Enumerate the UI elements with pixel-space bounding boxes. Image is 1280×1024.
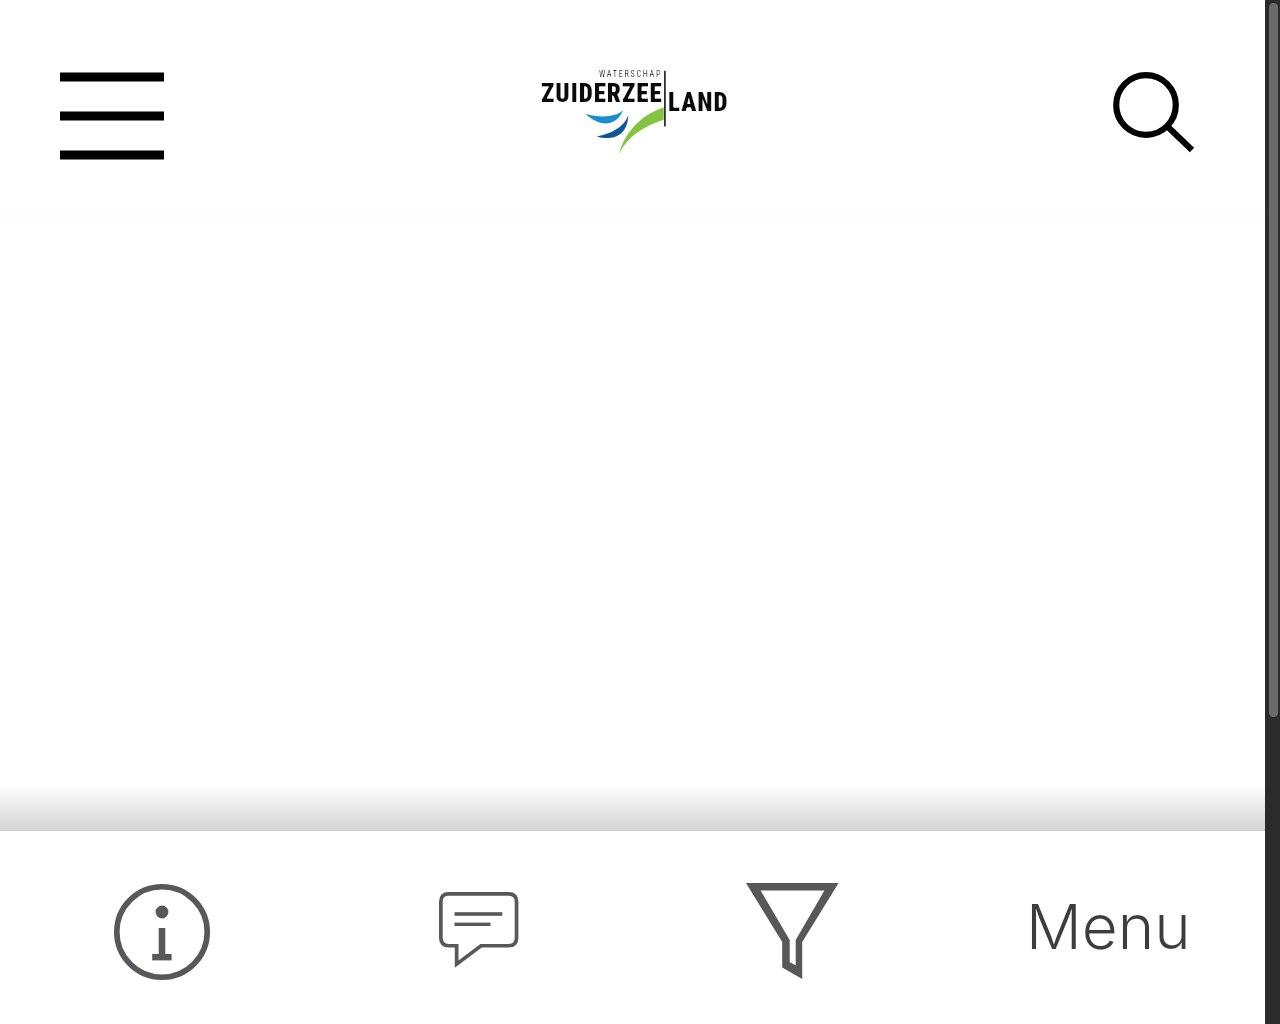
button[interactable]: Messages [434, 888, 524, 972]
staticText: LAND [668, 88, 729, 117]
staticText: ZUIDERZEE [541, 79, 663, 108]
button[interactable]: Waterschap Zuiderzeeland home [528, 56, 752, 148]
button[interactable]: Menu [1000, 831, 1250, 1024]
button[interactable]: Search [1100, 58, 1210, 168]
button[interactable]: Information [114, 884, 210, 980]
staticText: WATERSCHAP [599, 69, 663, 79]
button[interactable]: Open navigation menu [40, 52, 184, 180]
staticText: Menu [1026, 889, 1191, 964]
button[interactable]: Filter [746, 883, 839, 980]
